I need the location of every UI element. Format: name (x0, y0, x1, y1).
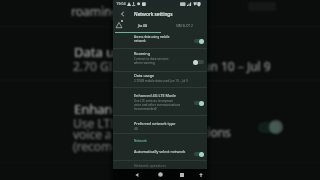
staticText: Network (134, 139, 147, 143)
button[interactable]: Back (116, 8, 128, 19)
staticText: Use LTI (73, 115, 115, 131)
staticText: 19:04 (116, 1, 126, 6)
staticText: (recom (73, 138, 113, 154)
staticText: Automatically select network (134, 149, 186, 154)
button[interactable]: Recent apps (176, 169, 187, 180)
staticText: Data u (74, 43, 115, 61)
staticText: Network operators (134, 163, 166, 168)
staticText: Use LTE services to improve voice and ot… (134, 99, 181, 111)
staticText: 2.70 GI (73, 58, 113, 74)
staticText: Preferred network type (134, 121, 176, 126)
staticText: Enhan (74, 100, 113, 118)
button[interactable]: Home (155, 169, 166, 180)
staticText: un 10 – Jul 9 (203, 58, 271, 74)
button[interactable]: Access data using mobile network (113, 34, 207, 49)
staticText: Access data using mobile network (134, 35, 174, 43)
staticText: Roaming (134, 51, 150, 56)
button[interactable]: Jio 4G (124, 19, 161, 32)
staticText: Enhanced 4G LTE Mode (134, 93, 176, 98)
button[interactable]: Network (134, 139, 147, 143)
button[interactable]: SIM SLOT 2 (163, 19, 205, 32)
button[interactable]: Preferred network type (113, 116, 207, 133)
staticText: voice a (73, 126, 112, 142)
staticText: tions (203, 124, 231, 140)
button[interactable]: Roaming (113, 49, 207, 71)
button[interactable]: Keyboard (195, 169, 206, 180)
staticText: Connect to data services when roaming (134, 57, 174, 65)
staticText: 4G (134, 127, 138, 131)
button[interactable]: Automatically select network (113, 145, 207, 160)
button[interactable]: Enhanced 4G LTE Mode (113, 87, 207, 115)
button[interactable]: Data usage (113, 71, 207, 87)
staticText: Jio 4G (138, 23, 148, 28)
staticText: Network settings (134, 11, 173, 17)
button[interactable]: Back (131, 169, 142, 180)
staticText: roaming (71, 3, 119, 19)
staticText: Data usage (134, 73, 155, 78)
staticText: 2.70GB mobile data used Jun 10 – Jul 9 (134, 79, 188, 83)
staticText: 56% (194, 1, 202, 6)
staticText: SIM SLOT 2 (176, 24, 193, 28)
